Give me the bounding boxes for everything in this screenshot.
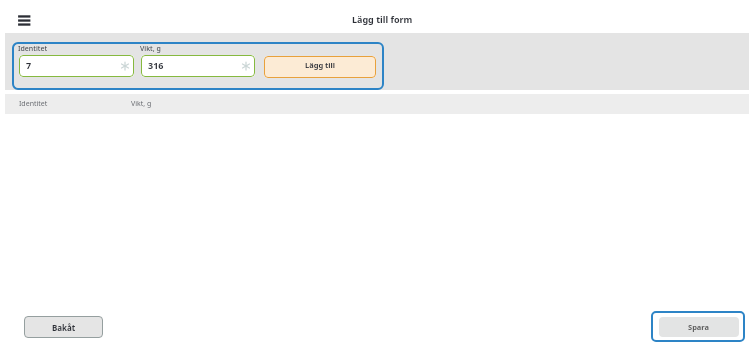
staticText: Spara [688,322,710,332]
staticText: Lägg till [305,60,336,70]
button[interactable]: 316 [141,55,255,77]
staticText: Vikt, g [140,44,161,54]
staticText: 7 [26,59,32,71]
staticText: Identitet [19,99,48,109]
staticText: 316 [148,59,164,71]
button[interactable]: Menu [11,7,37,33]
button[interactable]: Lägg till [264,56,376,78]
button[interactable]: Bakåt [24,316,103,338]
staticText: Lägg till form [352,13,413,25]
staticText: Vikt, g [131,99,152,109]
staticText: Identitet [18,44,48,54]
button[interactable]: Spara [651,311,745,342]
button[interactable]: 7 [19,55,134,77]
staticText: Bakåt [52,322,76,333]
